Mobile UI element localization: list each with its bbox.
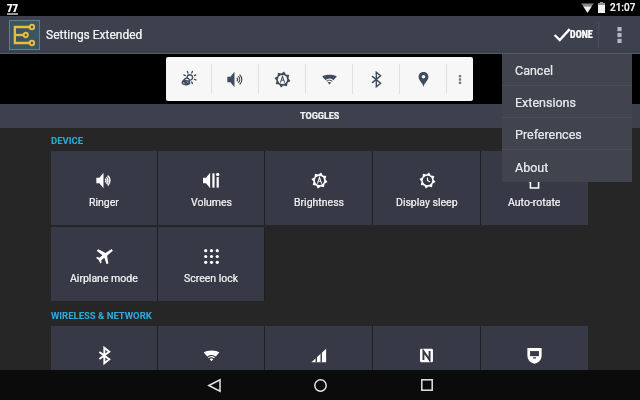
button[interactable]: Volume [212, 57, 258, 101]
staticText: Display sleep [396, 196, 458, 208]
button[interactable]: Auto brightness [166, 57, 211, 101]
staticText: Airplane mode [70, 272, 138, 284]
button[interactable]: Screen lock [158, 227, 264, 301]
staticText: Volumes [191, 196, 232, 208]
staticText: Ringer [89, 196, 119, 208]
button[interactable]: Location [400, 57, 446, 101]
button[interactable]: Brightness [259, 57, 305, 101]
button[interactable] [373, 326, 480, 400]
button[interactable]: Recents [412, 370, 442, 400]
button[interactable]: Wi-Fi [306, 57, 352, 101]
button[interactable] [158, 326, 264, 400]
staticText: WIRELESS & NETWORK [51, 310, 152, 321]
button[interactable]: Ringer [51, 151, 157, 225]
button[interactable]: Volumes [158, 151, 264, 225]
button[interactable]: Extensions [502, 86, 632, 117]
staticText: Brightness [294, 196, 344, 208]
button[interactable]: More [447, 57, 473, 101]
staticText: DONE [570, 29, 593, 41]
button[interactable]: Bluetooth [353, 57, 399, 101]
button[interactable]: About [502, 150, 632, 182]
staticText: TOGGLES [300, 111, 340, 122]
button[interactable]: DONE [544, 16, 598, 54]
staticText: Extensions [515, 95, 576, 110]
staticText: Auto-rotate [508, 196, 561, 208]
staticText: Screen lock [184, 272, 239, 284]
button[interactable] [51, 326, 157, 400]
staticText: Settings Extended [46, 28, 143, 42]
staticText: 77 [7, 2, 19, 15]
button[interactable] [481, 326, 588, 400]
button[interactable]: Home [305, 370, 335, 400]
staticText: Cancel [515, 63, 554, 78]
staticText: DEVICE [51, 135, 84, 146]
button[interactable]: Display sleep [373, 151, 480, 225]
button[interactable]: Cancel [502, 54, 632, 85]
button[interactable]: Airplane mode [51, 227, 157, 301]
staticText: About [515, 160, 549, 175]
button[interactable]: Brightness [265, 151, 372, 225]
staticText: Preferences [515, 127, 582, 142]
button[interactable]: Back [199, 370, 229, 400]
button[interactable]: More options [599, 16, 640, 54]
button[interactable] [265, 326, 372, 400]
button[interactable]: Preferences [502, 118, 632, 149]
staticText: 21:07 [610, 2, 636, 14]
button[interactable]: Auto-rotate [481, 151, 588, 225]
